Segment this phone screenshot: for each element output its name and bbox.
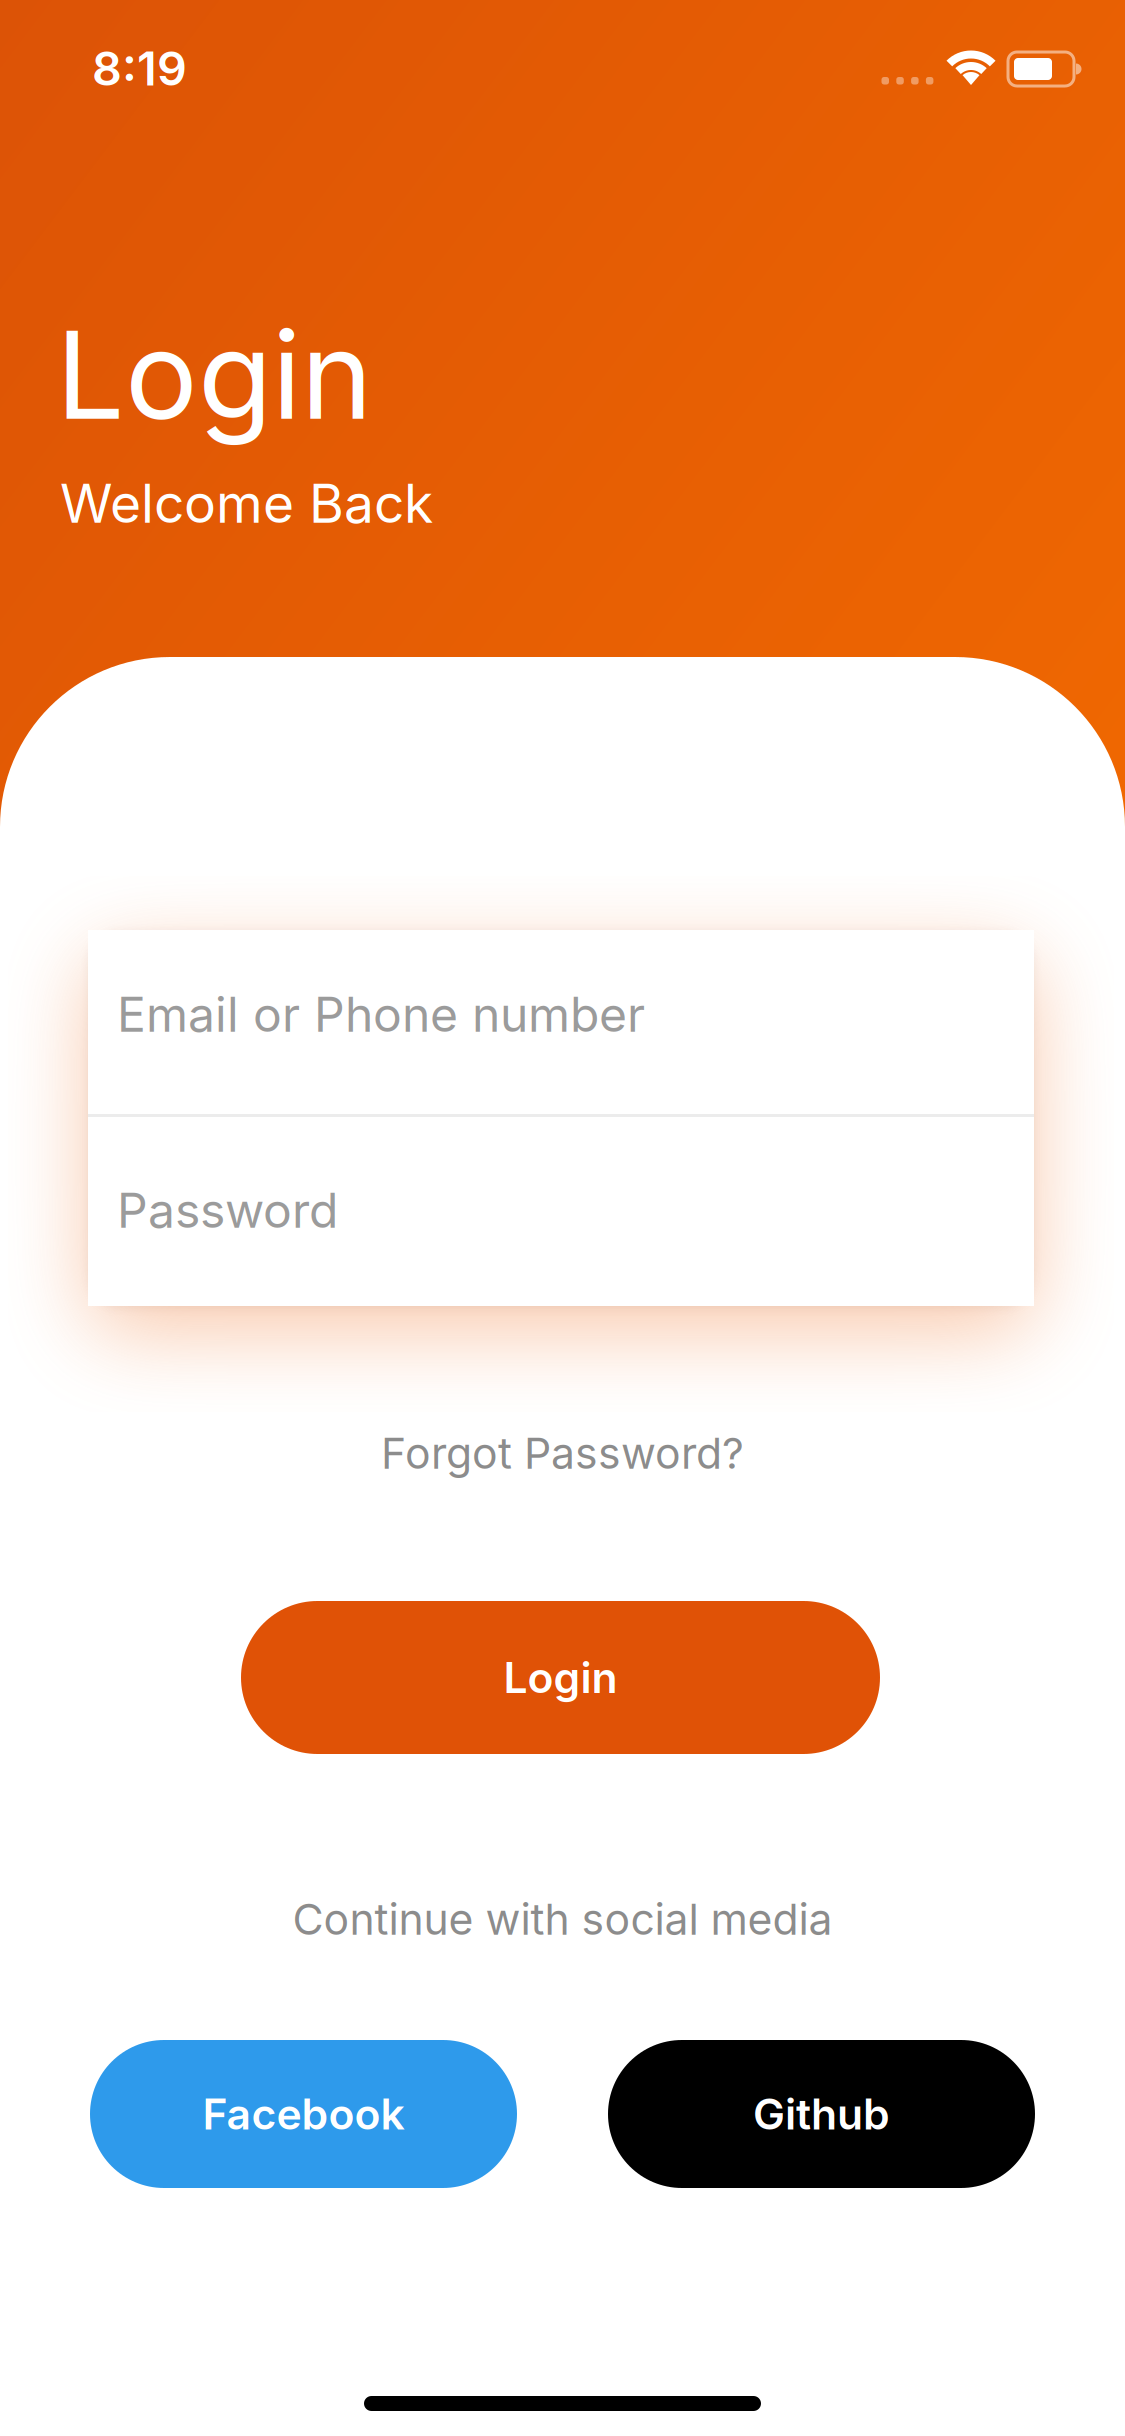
staticText: Password — [117, 1182, 338, 1239]
staticText: Forgot Password? — [381, 1428, 744, 1478]
button[interactable]: Facebook — [90, 2040, 517, 2188]
button[interactable]: Password — [88, 1117, 1034, 1306]
button[interactable]: Login — [241, 1601, 880, 1754]
staticText: 8:19 — [92, 41, 187, 96]
button[interactable]: Email or Phone number — [88, 930, 1034, 1114]
staticText: Login — [503, 1652, 617, 1703]
staticText: Login — [56, 303, 373, 446]
staticText: Facebook — [202, 2089, 404, 2139]
staticText: Email or Phone number — [117, 986, 645, 1043]
staticText: Welcome Back — [60, 472, 433, 535]
staticText: Continue with social media — [292, 1894, 832, 1944]
button[interactable]: Github — [608, 2040, 1035, 2188]
button[interactable]: Forgot Password? — [0, 1428, 1125, 1478]
staticText: Github — [753, 2089, 890, 2139]
